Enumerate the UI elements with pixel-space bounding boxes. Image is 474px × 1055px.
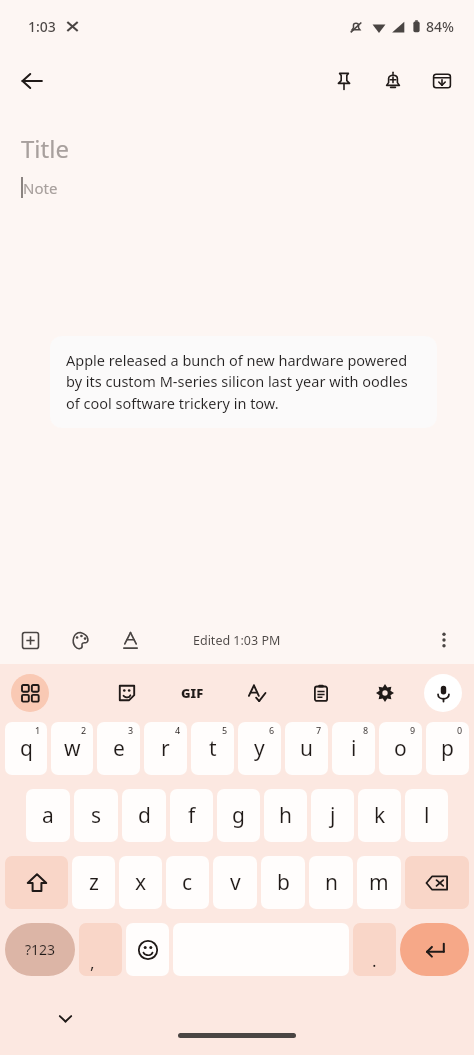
staticText: x: [135, 868, 147, 897]
staticText: 1: [35, 724, 41, 736]
staticText: ?123: [25, 940, 56, 959]
staticText: a: [42, 801, 54, 830]
button[interactable]: k: [358, 789, 401, 842]
staticText: r: [161, 734, 170, 763]
button[interactable]: Settings: [368, 676, 402, 710]
button[interactable]: l: [405, 789, 448, 842]
button[interactable]: o: [379, 722, 422, 775]
staticText: o: [394, 734, 407, 763]
button[interactable]: Clipboard: [304, 676, 338, 710]
staticText: g: [232, 801, 245, 830]
staticText: 3: [128, 724, 134, 736]
button[interactable]: m: [357, 856, 401, 909]
button[interactable]: r: [144, 722, 187, 775]
button[interactable]: h: [264, 789, 307, 842]
button[interactable]: Back: [8, 57, 56, 105]
staticText: i: [351, 734, 357, 763]
staticText: 8: [363, 724, 369, 736]
button[interactable]: x: [119, 856, 162, 909]
staticText: e: [113, 734, 125, 763]
staticText: c: [182, 868, 193, 897]
button[interactable]: Keyboard tools: [11, 674, 49, 712]
staticText: s: [91, 801, 102, 830]
staticText: 84%: [426, 17, 454, 36]
button[interactable]: u: [285, 722, 328, 775]
button[interactable]: Apple released a bunch of new hardware p…: [50, 336, 437, 428]
staticText: d: [138, 801, 151, 830]
button[interactable]: Spell check: [240, 676, 274, 710]
staticText: f: [188, 801, 196, 830]
button[interactable]: p: [426, 722, 469, 775]
staticText: 2: [81, 724, 87, 736]
button[interactable]: b: [261, 856, 305, 909]
button[interactable]: e: [97, 722, 140, 775]
button[interactable]: s: [74, 789, 118, 842]
button[interactable]: .: [353, 923, 396, 976]
button[interactable]: f: [170, 789, 213, 842]
staticText: 5: [222, 724, 228, 736]
button[interactable]: Add: [10, 620, 50, 660]
button[interactable]: GIF: [174, 675, 210, 711]
button[interactable]: Add reminder: [371, 59, 415, 103]
button[interactable]: Backspace: [405, 856, 469, 909]
button[interactable]: Formatting: [110, 620, 150, 660]
button[interactable]: Background color: [60, 620, 100, 660]
staticText: 4: [175, 724, 181, 736]
staticText: GIF: [181, 684, 204, 702]
button[interactable]: Voice input: [424, 674, 462, 712]
staticText: ,: [90, 951, 95, 974]
staticText: k: [374, 801, 386, 830]
button[interactable]: ?123: [5, 923, 75, 976]
staticText: Note: [23, 178, 58, 198]
button[interactable]: Emoji: [126, 923, 169, 976]
staticText: 0: [457, 724, 463, 736]
staticText: 6: [269, 724, 275, 736]
button[interactable]: Hide keyboard: [48, 1001, 82, 1035]
button[interactable]: n: [309, 856, 353, 909]
staticText: 9: [410, 724, 416, 736]
staticText: p: [441, 734, 454, 763]
button[interactable]: w: [51, 722, 93, 775]
button[interactable]: q: [5, 722, 47, 775]
staticText: j: [330, 801, 336, 830]
staticText: h: [279, 801, 292, 830]
button[interactable]: y: [238, 722, 281, 775]
staticText: q: [20, 734, 33, 763]
staticText: t: [209, 734, 217, 763]
staticText: Apple released a bunch of new hardware p…: [66, 350, 421, 414]
button[interactable]: t: [191, 722, 234, 775]
staticText: 7: [316, 724, 322, 736]
staticText: l: [424, 801, 430, 830]
staticText: 1:03: [28, 17, 56, 36]
button[interactable]: g: [217, 789, 260, 842]
button[interactable]: Shift: [5, 856, 68, 909]
staticText: w: [64, 734, 81, 763]
staticText: n: [325, 868, 338, 897]
staticText: y: [254, 734, 265, 763]
staticText: z: [89, 868, 99, 897]
button[interactable]: v: [213, 856, 257, 909]
button[interactable]: i: [332, 722, 375, 775]
staticText: .: [372, 949, 377, 972]
staticText: Title: [21, 132, 69, 165]
button[interactable]: d: [122, 789, 166, 842]
button[interactable]: ,: [79, 923, 122, 976]
staticText: b: [277, 868, 290, 897]
button[interactable]: Stickers: [110, 676, 144, 710]
button[interactable]: More options: [424, 620, 464, 660]
staticText: v: [230, 868, 241, 897]
button[interactable]: j: [311, 789, 354, 842]
button[interactable]: a: [26, 789, 70, 842]
button[interactable]: Archive: [420, 59, 464, 103]
button[interactable]: Pin: [322, 59, 366, 103]
staticText: m: [369, 868, 389, 897]
button[interactable]: Enter: [400, 923, 469, 976]
staticText: u: [300, 734, 313, 763]
button[interactable]: c: [166, 856, 209, 909]
staticText: Edited 1:03 PM: [193, 632, 281, 649]
button[interactable]: z: [72, 856, 115, 909]
